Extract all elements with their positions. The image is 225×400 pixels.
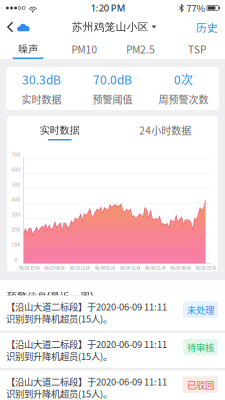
staticText: 200 — [11, 226, 20, 233]
button[interactable]: 24小时数据 — [112, 116, 218, 145]
staticText: 待审核 — [187, 340, 214, 354]
staticText: 30.3dB — [22, 71, 61, 88]
button[interactable]: 噪声 — [0, 38, 56, 59]
staticText: 噪声 — [18, 43, 38, 56]
staticText: 【沿山大道二标段】于2020-06-09 11:11 — [6, 375, 167, 388]
button[interactable]: Back — [0, 16, 16, 38]
staticText: 已驳回 — [187, 378, 214, 391]
button[interactable]: 【沿山大道二标段】于2020-06-09 11:11 — [0, 295, 225, 330]
staticText: 06/05 19:14 — [195, 265, 215, 271]
staticText: 06/04 21:14 — [145, 265, 165, 271]
button[interactable]: TSP — [169, 38, 225, 59]
button[interactable]: PM2.5 — [112, 38, 169, 59]
staticText: 06/04 01:14 — [95, 265, 115, 271]
staticText: TSP — [188, 42, 206, 56]
staticText: 06/04 12:14 — [120, 265, 140, 271]
staticText: 预警阈值 — [92, 92, 132, 106]
staticText: PM2.5 — [126, 42, 155, 56]
button[interactable]: 实时数据 — [7, 117, 112, 144]
staticText: 识别到升降机超员(15人)。 — [6, 312, 112, 325]
staticText: 历史 — [196, 19, 218, 35]
staticText: 300 — [11, 211, 20, 218]
staticText: PM10 — [71, 42, 97, 56]
staticText: 【沿山大道二标段】于2020-06-09 11:11 — [6, 300, 167, 313]
staticText: 06/05 08:14 — [170, 265, 190, 271]
staticText: 06/03 04:14 — [44, 265, 64, 271]
staticText: 1:20 PM — [91, 2, 126, 14]
staticText: 700 — [11, 151, 20, 158]
staticText: 识别到升降机超员(15人)。 — [6, 349, 112, 363]
button[interactable]: 【沿山大道二标段】于2020-06-09 11:11 — [0, 370, 225, 400]
staticText: 70.0dB — [93, 71, 132, 88]
staticText: 苏州鸡笼山小区 — [72, 20, 149, 34]
staticText: 06/02 19:14 — [19, 265, 39, 271]
staticText: 0次 — [174, 71, 193, 88]
staticText: 未处理 — [187, 303, 214, 316]
staticText: 400 — [11, 196, 20, 203]
staticText: 【沿山大道二标段】于2020-06-09 11:11 — [6, 337, 167, 351]
staticText: 24小时数据 — [139, 123, 191, 137]
staticText: 77% — [186, 1, 205, 15]
button[interactable]: PM10 — [56, 38, 112, 59]
staticText: 600 — [11, 166, 20, 173]
staticText: 实时数据 — [40, 124, 80, 136]
staticText: 06/03 13:14 — [69, 265, 89, 271]
staticText: 100 — [11, 241, 20, 248]
staticText: 识别到升降机超员(15人)。 — [6, 387, 112, 400]
button[interactable]: 历史 — [189, 14, 225, 40]
staticText: 周预警次数 — [158, 92, 208, 106]
button[interactable]: 【沿山大道二标段】于2020-06-09 11:11 — [0, 333, 225, 368]
staticText: 0 — [14, 256, 17, 263]
staticText: 实时数据 — [21, 92, 61, 106]
staticText: 预警信息(最近一周) — [7, 289, 93, 303]
staticText: 500 — [11, 181, 20, 188]
